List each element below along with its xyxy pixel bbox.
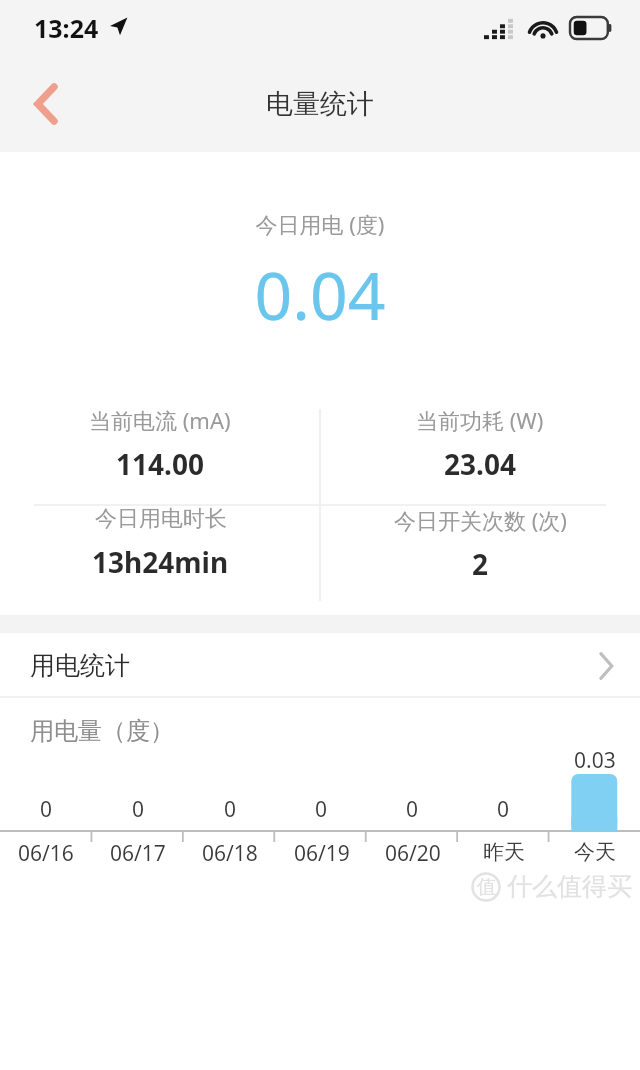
staticText: 06/16 [18, 839, 74, 868]
staticText: 06/18 [202, 839, 258, 868]
staticText: 13h24min [92, 543, 229, 581]
staticText: 昨天 [483, 839, 525, 865]
staticText: 114.00 [116, 445, 204, 483]
staticText: 0 [497, 795, 510, 824]
staticText: 什么值得买 [507, 871, 632, 902]
button[interactable]: Back [14, 72, 78, 136]
staticText: 0.03 [574, 746, 616, 775]
staticText: 0 [406, 795, 419, 824]
staticText: 0.04 [0, 249, 640, 339]
staticText: 今天 [574, 839, 616, 865]
staticText: 0 [40, 795, 53, 824]
staticText: 23.04 [444, 445, 516, 483]
staticText: 当前功耗 (W) [416, 405, 544, 435]
staticText: 0 [315, 795, 328, 824]
staticText: 2 [472, 545, 489, 583]
staticText: 13:24 [34, 11, 99, 45]
staticText: 今日开关次数 (次) [394, 505, 567, 535]
staticText: 用电统计 [30, 650, 130, 681]
staticText: 电量统计 [266, 87, 374, 121]
staticText: 用电量（度） [30, 716, 174, 746]
staticText: 06/17 [110, 839, 166, 868]
staticText: 今日用电 (度) [0, 209, 640, 239]
staticText: 0 [132, 795, 145, 824]
staticText: 当前电流 (mA) [89, 405, 231, 435]
button[interactable]: 用电统计 [0, 633, 640, 698]
staticText: 06/20 [385, 839, 441, 868]
staticText: 0 [224, 795, 237, 824]
staticText: 今日用电时长 [95, 505, 227, 533]
staticText: 值 [477, 875, 496, 899]
staticText: 06/19 [294, 839, 350, 868]
